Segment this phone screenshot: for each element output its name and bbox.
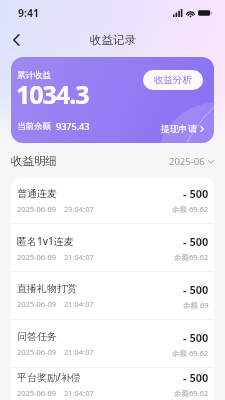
staticText: - 500 <box>183 186 209 201</box>
staticText: 余额 69.62 <box>172 348 209 358</box>
staticText: 普通连麦 <box>17 187 57 200</box>
staticText: 收益明细 <box>11 154 57 168</box>
staticText: 2025-06-09 21:04:07 <box>17 347 94 357</box>
staticText: 2025-06-09 23:04:07 <box>17 204 94 214</box>
button[interactable]: 2025-06 <box>169 155 214 168</box>
staticText: 9375.43 <box>56 120 90 132</box>
staticText: 累计收益 <box>17 70 51 81</box>
staticText: 2025-06-09 21:04:07 <box>17 388 94 398</box>
staticText: - 500 <box>183 330 209 345</box>
staticText: 提现申请 <box>161 123 197 134</box>
staticText: 收益记录 <box>90 33 136 47</box>
staticText: 余额 69 <box>183 300 209 310</box>
staticText: 平台奖励/补偿 <box>17 370 81 384</box>
staticText: 当前余额 <box>17 121 51 132</box>
button[interactable]: 匿名1v1连麦 <box>11 224 214 271</box>
button[interactable]: 普通连麦 <box>11 177 214 223</box>
button[interactable]: 平台奖励/补偿 <box>11 368 214 400</box>
staticText: 余额 69.62 <box>172 204 209 214</box>
staticText: 2025-06-09 21:04:07 <box>17 299 94 309</box>
button[interactable]: 直播礼物打赏 <box>11 272 214 319</box>
staticText: 1034.3 <box>16 77 89 111</box>
staticText: - 500 <box>183 282 209 297</box>
staticText: 9:41 <box>18 6 39 20</box>
staticText: 余额69.62 <box>174 388 209 398</box>
button[interactable]: 提现申请 <box>161 123 204 134</box>
staticText: 直播礼物打赏 <box>17 282 77 295</box>
staticText: 2025-06 <box>169 155 205 168</box>
button[interactable]: 问答任务 <box>11 320 214 367</box>
staticText: 余额69.62 <box>174 252 209 262</box>
staticText: 2025-06-09 21:04:07 <box>17 252 94 262</box>
button[interactable]: Back <box>3 27 29 53</box>
staticText: 收益分析 <box>154 74 192 86</box>
staticText: - 500 <box>183 370 209 385</box>
staticText: 问答任务 <box>17 330 57 343</box>
staticText: - 500 <box>183 234 209 249</box>
staticText: 匿名1v1连麦 <box>17 234 74 248</box>
button[interactable]: 收益分析 <box>143 70 203 90</box>
